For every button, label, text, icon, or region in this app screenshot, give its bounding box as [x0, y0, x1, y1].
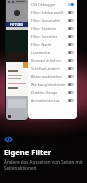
- button[interactable]: Bilder ausblenden: [28, 72, 77, 80]
- staticText: Filter: Invertiert: [31, 34, 58, 39]
- button[interactable]: Lesemodus: [28, 48, 77, 56]
- button[interactable]: Filter: Invertiert: [28, 32, 77, 40]
- staticText: Filter: Graustufen: [31, 18, 61, 23]
- staticText: Filter: Sepiaton: [31, 26, 57, 31]
- staticText: Lesemodus: [31, 50, 51, 55]
- staticText: Werbung blockieren: [31, 82, 66, 87]
- button[interactable]: Filter: Sepiaton: [28, 24, 77, 32]
- staticText: Filter: Nacht: [31, 42, 52, 47]
- button[interactable]: Animationen aus: [28, 96, 77, 104]
- staticText: Dunkles Design: [31, 90, 58, 95]
- button[interactable]: Code: [4, 135, 13, 144]
- staticText: Eigene Filter: [4, 147, 52, 157]
- button[interactable]: Werbung blockieren: [28, 80, 77, 88]
- staticText: Animationen aus: [31, 98, 60, 103]
- button[interactable]: Schriftart ändern: [28, 64, 77, 72]
- staticText: CSS Debugger: [31, 2, 56, 7]
- staticText: Kontrast erhöhen: [31, 58, 61, 63]
- button[interactable]: Kontrast erhöhen: [28, 56, 77, 64]
- button[interactable]: Filter: Schwarzweiß: [28, 8, 77, 16]
- staticText: Schriftart ändern: [31, 66, 60, 71]
- staticText: Filter: Schwarzweiß: [31, 10, 64, 15]
- button[interactable]: CSS Debugger: [28, 0, 77, 8]
- button[interactable]: Filter: Nacht: [28, 40, 77, 48]
- staticText: Ändere das Aussehen von Seiten mit Seite…: [4, 159, 85, 172]
- staticText: Bilder ausblenden: [31, 74, 62, 79]
- button[interactable]: Filter: Graustufen: [28, 16, 77, 24]
- button[interactable]: Dunkles Design: [28, 88, 77, 96]
- staticText: FUTURE: [10, 22, 24, 27]
- button[interactable]: FUTURE: [5, 0, 29, 121]
